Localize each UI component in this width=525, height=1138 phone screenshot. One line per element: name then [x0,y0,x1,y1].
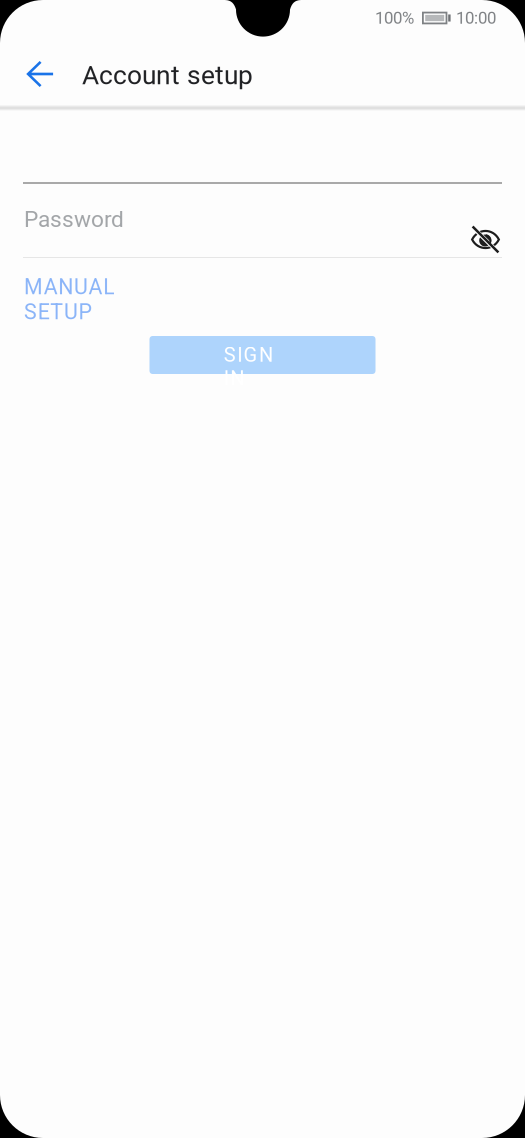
staticText: SIGN IN [224,343,301,367]
staticText: Password [24,206,124,233]
staticText: Account setup [82,60,253,91]
button[interactable]: Show password [459,222,525,257]
button[interactable]: SIGN IN [149,336,375,374]
staticText: MANUAL SETUP [24,274,188,299]
button[interactable]: Back [0,36,82,105]
button[interactable]: MANUAL SETUP [0,253,224,309]
staticText: 100% [375,8,414,28]
staticText: 10:00 [456,8,496,28]
